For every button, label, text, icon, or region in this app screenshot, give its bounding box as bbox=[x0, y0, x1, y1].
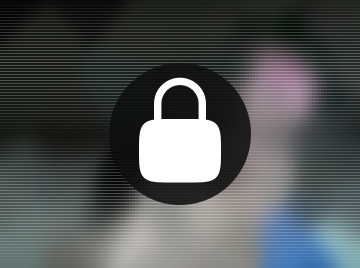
button[interactable]: Content locked bbox=[109, 63, 251, 205]
